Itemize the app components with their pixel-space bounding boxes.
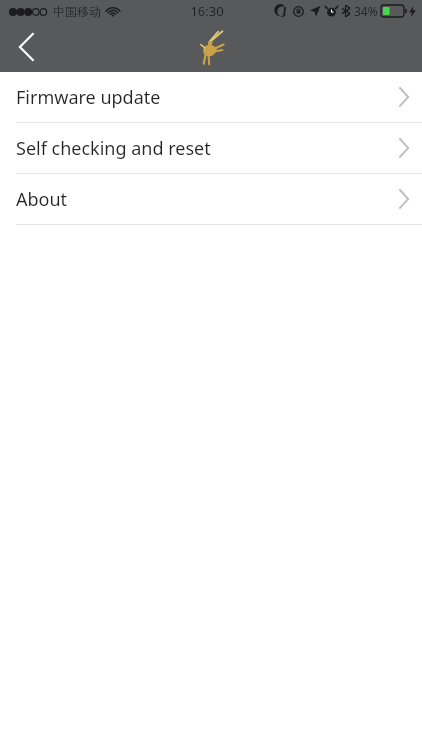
staticText: 中国移动	[53, 4, 101, 19]
button[interactable]: Self checking and reset	[0, 123, 422, 173]
button[interactable]: Firmware update	[0, 72, 422, 122]
button[interactable]: Back	[0, 22, 52, 72]
staticText: 34%	[354, 3, 378, 19]
staticText: Firmware update	[16, 85, 161, 110]
staticText: 16:30	[190, 2, 224, 20]
staticText: About	[16, 187, 68, 212]
button[interactable]: About	[0, 174, 422, 224]
staticText: Self checking and reset	[16, 136, 211, 161]
